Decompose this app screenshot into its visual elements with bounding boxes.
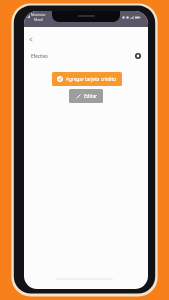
button[interactable]: Editar <box>69 89 103 103</box>
staticText: Movil <box>34 17 44 22</box>
button[interactable]: Agregar tarjeta crédito <box>52 72 122 86</box>
staticText: Agregar tarjeta crédito <box>66 76 117 82</box>
button[interactable]: Efectivo <box>24 49 148 63</box>
staticText: Editar <box>84 93 97 99</box>
staticText: Movistar <box>31 12 46 17</box>
button[interactable]: Back <box>24 33 37 46</box>
staticText: Efectivo <box>31 53 48 59</box>
